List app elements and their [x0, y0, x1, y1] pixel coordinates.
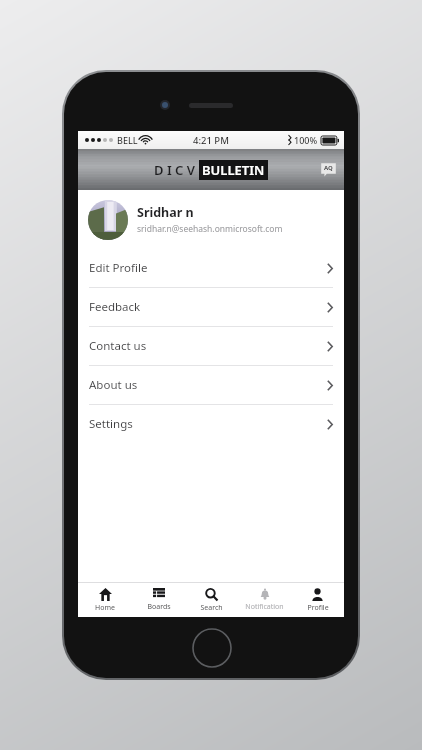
staticText: Profile — [307, 603, 329, 613]
button[interactable]: Profile — [291, 583, 344, 617]
staticText: AQ — [324, 164, 333, 172]
staticText: 100% — [294, 134, 318, 146]
staticText: Edit Profile — [89, 260, 327, 276]
button[interactable]: Contact us — [78, 327, 344, 365]
staticText: sridhar.n@seehash.onmicrosoft.com — [137, 223, 283, 235]
staticText: Settings — [89, 416, 327, 432]
button[interactable]: About us — [78, 366, 344, 404]
staticText: Boards — [147, 602, 171, 612]
staticText: BELL — [117, 134, 138, 146]
staticText: 4:21 PM — [193, 134, 229, 147]
button[interactable]: Boards — [132, 583, 185, 617]
staticText: D I C V — [154, 161, 195, 179]
button[interactable]: Messages — [320, 162, 337, 177]
staticText: Search — [200, 603, 223, 613]
staticText: Home — [95, 603, 115, 613]
button[interactable]: Edit Profile — [78, 249, 344, 287]
staticText: About us — [89, 377, 327, 393]
staticText: Notification — [245, 602, 284, 612]
staticText: Sridhar n — [137, 204, 194, 221]
button[interactable]: Feedback — [78, 288, 344, 326]
button[interactable]: Search — [185, 583, 238, 617]
button[interactable]: Home — [78, 583, 132, 617]
button[interactable]: Settings — [78, 405, 344, 443]
staticText: Feedback — [89, 299, 327, 315]
staticText: Contact us — [89, 338, 327, 354]
button[interactable]: Sridhar n — [78, 190, 344, 249]
button[interactable]: Notification — [238, 583, 291, 617]
staticText: BULLETIN — [202, 161, 265, 179]
